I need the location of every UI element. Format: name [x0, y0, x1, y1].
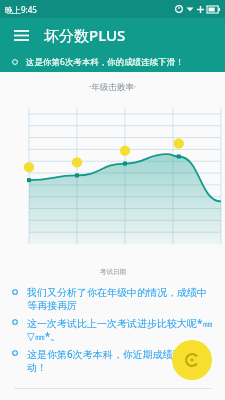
button[interactable]: Menu: [8, 22, 34, 48]
staticText: 这是你第6次考本科，你的成绩连续下滑！: [26, 56, 184, 68]
staticText: 这一次考试比上一次考试进步比较大呢*㎜▽㎜*。: [27, 316, 215, 343]
button[interactable]: 我们又分析了你在年级中的情况，成绩中等再接再厉: [12, 286, 215, 312]
staticText: 我们又分析了你在年级中的情况，成绩中等再接再厉: [27, 286, 215, 312]
staticText: 晚上9:45: [5, 4, 37, 15]
button[interactable]: Refresh: [172, 340, 212, 380]
button[interactable]: 这是你第6次考本科，你近期成绩比较波动！: [12, 347, 215, 374]
staticText: 坏分数PLUS: [44, 25, 126, 45]
staticText: 考试日期: [100, 268, 126, 276]
staticText: ·年级击败率·: [89, 81, 137, 93]
staticText: 这是你第6次考本科，你近期成绩比较波动！: [27, 347, 215, 374]
button[interactable]: 这一次考试比上一次考试进步比较大呢*㎜▽㎜*。: [12, 316, 215, 343]
